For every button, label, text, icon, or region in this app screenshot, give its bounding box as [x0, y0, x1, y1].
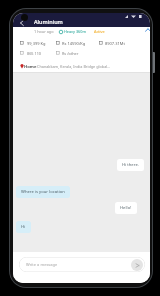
button[interactable] — [131, 259, 143, 271]
button[interactable] — [143, 27, 150, 33]
staticText: Hi there. — [122, 162, 139, 168]
button[interactable]: Write a message — [19, 257, 145, 272]
staticText: 865 110 — [27, 51, 42, 56]
staticText: Hello! — [120, 205, 132, 211]
staticText: 1 hour ago — [34, 29, 54, 34]
staticText: Active — [94, 29, 105, 34]
button[interactable]: Where is your location — [21, 189, 65, 195]
button[interactable]: 1 hour ago — [13, 27, 150, 72]
staticText: Rs /other — [62, 51, 79, 56]
staticText: Home — [24, 64, 37, 70]
button[interactable]: Hello! — [120, 205, 132, 211]
button[interactable]: Hi — [21, 224, 26, 230]
staticText: Where is your location — [21, 189, 65, 195]
staticText: Aluminium — [34, 18, 63, 25]
staticText: Rs 14590/Kg — [62, 41, 86, 46]
button[interactable]: Hi there. — [122, 162, 139, 168]
staticText: 8907.31Mt — [105, 41, 125, 46]
staticText: Chanakkam, Kerala, India Bridge global..… — [37, 64, 111, 69]
staticText: Hi — [21, 224, 26, 230]
staticText: Write a message — [26, 262, 58, 267]
staticText: 99,399 Kg — [27, 41, 46, 46]
button[interactable] — [18, 18, 26, 27]
staticText: Heavy 360m — [64, 29, 87, 34]
